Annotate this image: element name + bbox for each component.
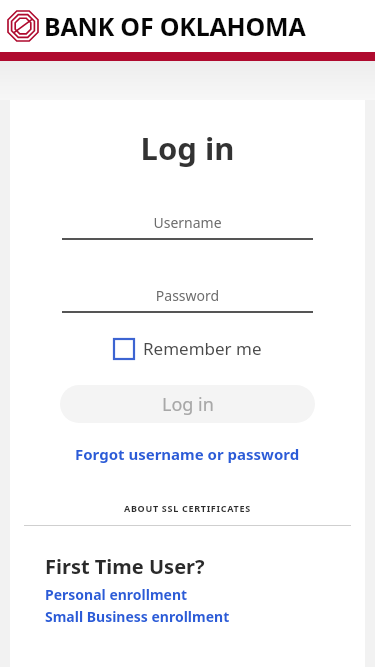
staticText: ABOUT SSL CERTIFICATES (124, 502, 251, 514)
button[interactable]: Personal enrollment (45, 585, 188, 604)
staticText: Password (62, 286, 313, 305)
staticText: Log in (162, 392, 214, 417)
button[interactable]: Remember me (10, 334, 365, 363)
button[interactable]: ABOUT SSL CERTIFICATES (10, 502, 365, 514)
staticText: Log in (10, 127, 365, 169)
button[interactable]: Log in (60, 385, 315, 423)
button[interactable]: Forgot username or password (10, 444, 365, 464)
staticText: Username (62, 213, 313, 232)
staticText: BANK OF OKLAHOMA (44, 9, 306, 43)
staticText: Forgot username or password (75, 444, 300, 464)
button[interactable]: Small Business enrollment (45, 607, 230, 626)
staticText: First Time User? (45, 553, 205, 580)
staticText: Remember me (143, 337, 262, 360)
button[interactable]: Password (62, 286, 313, 313)
button[interactable]: Username (62, 213, 313, 240)
button[interactable]: Bank of Oklahoma home (8, 9, 306, 43)
